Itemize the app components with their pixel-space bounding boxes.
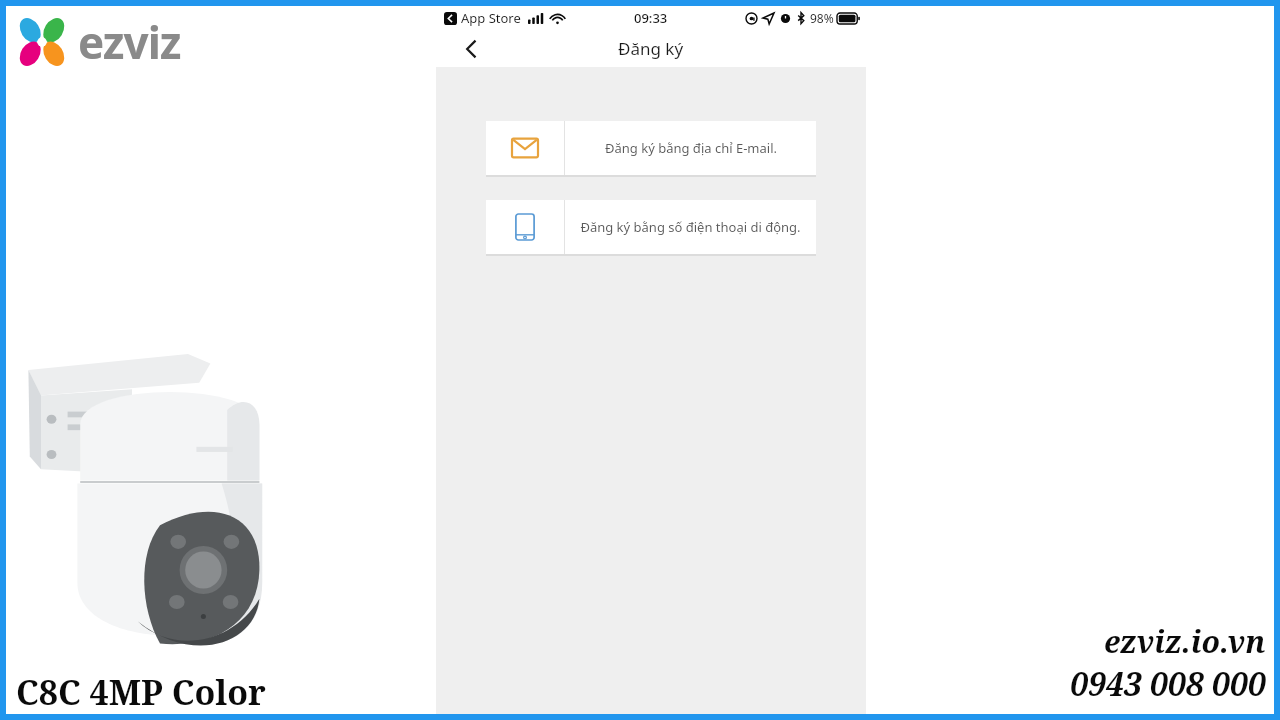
- staticText: Đăng ký bằng số điện thoại di động.: [580, 218, 801, 236]
- button[interactable]: Back: [454, 31, 490, 67]
- staticText: Đăng ký bằng địa chỉ E-mail.: [605, 139, 777, 157]
- staticText: Đăng ký: [618, 37, 684, 60]
- staticText: C8C 4MP Color: [16, 669, 266, 715]
- staticText: 09:33: [634, 9, 668, 27]
- other: Email: [512, 135, 538, 161]
- other: Phone: [512, 214, 538, 240]
- button[interactable]: Phone: [486, 200, 816, 254]
- staticText: ezviz.io.vn: [1104, 621, 1266, 662]
- staticText: ezviz: [78, 12, 181, 72]
- staticText: App Store: [461, 9, 521, 27]
- staticText: 0943 008 000: [1070, 662, 1266, 706]
- button[interactable]: Email: [486, 121, 816, 175]
- staticText: 98%: [810, 10, 834, 26]
